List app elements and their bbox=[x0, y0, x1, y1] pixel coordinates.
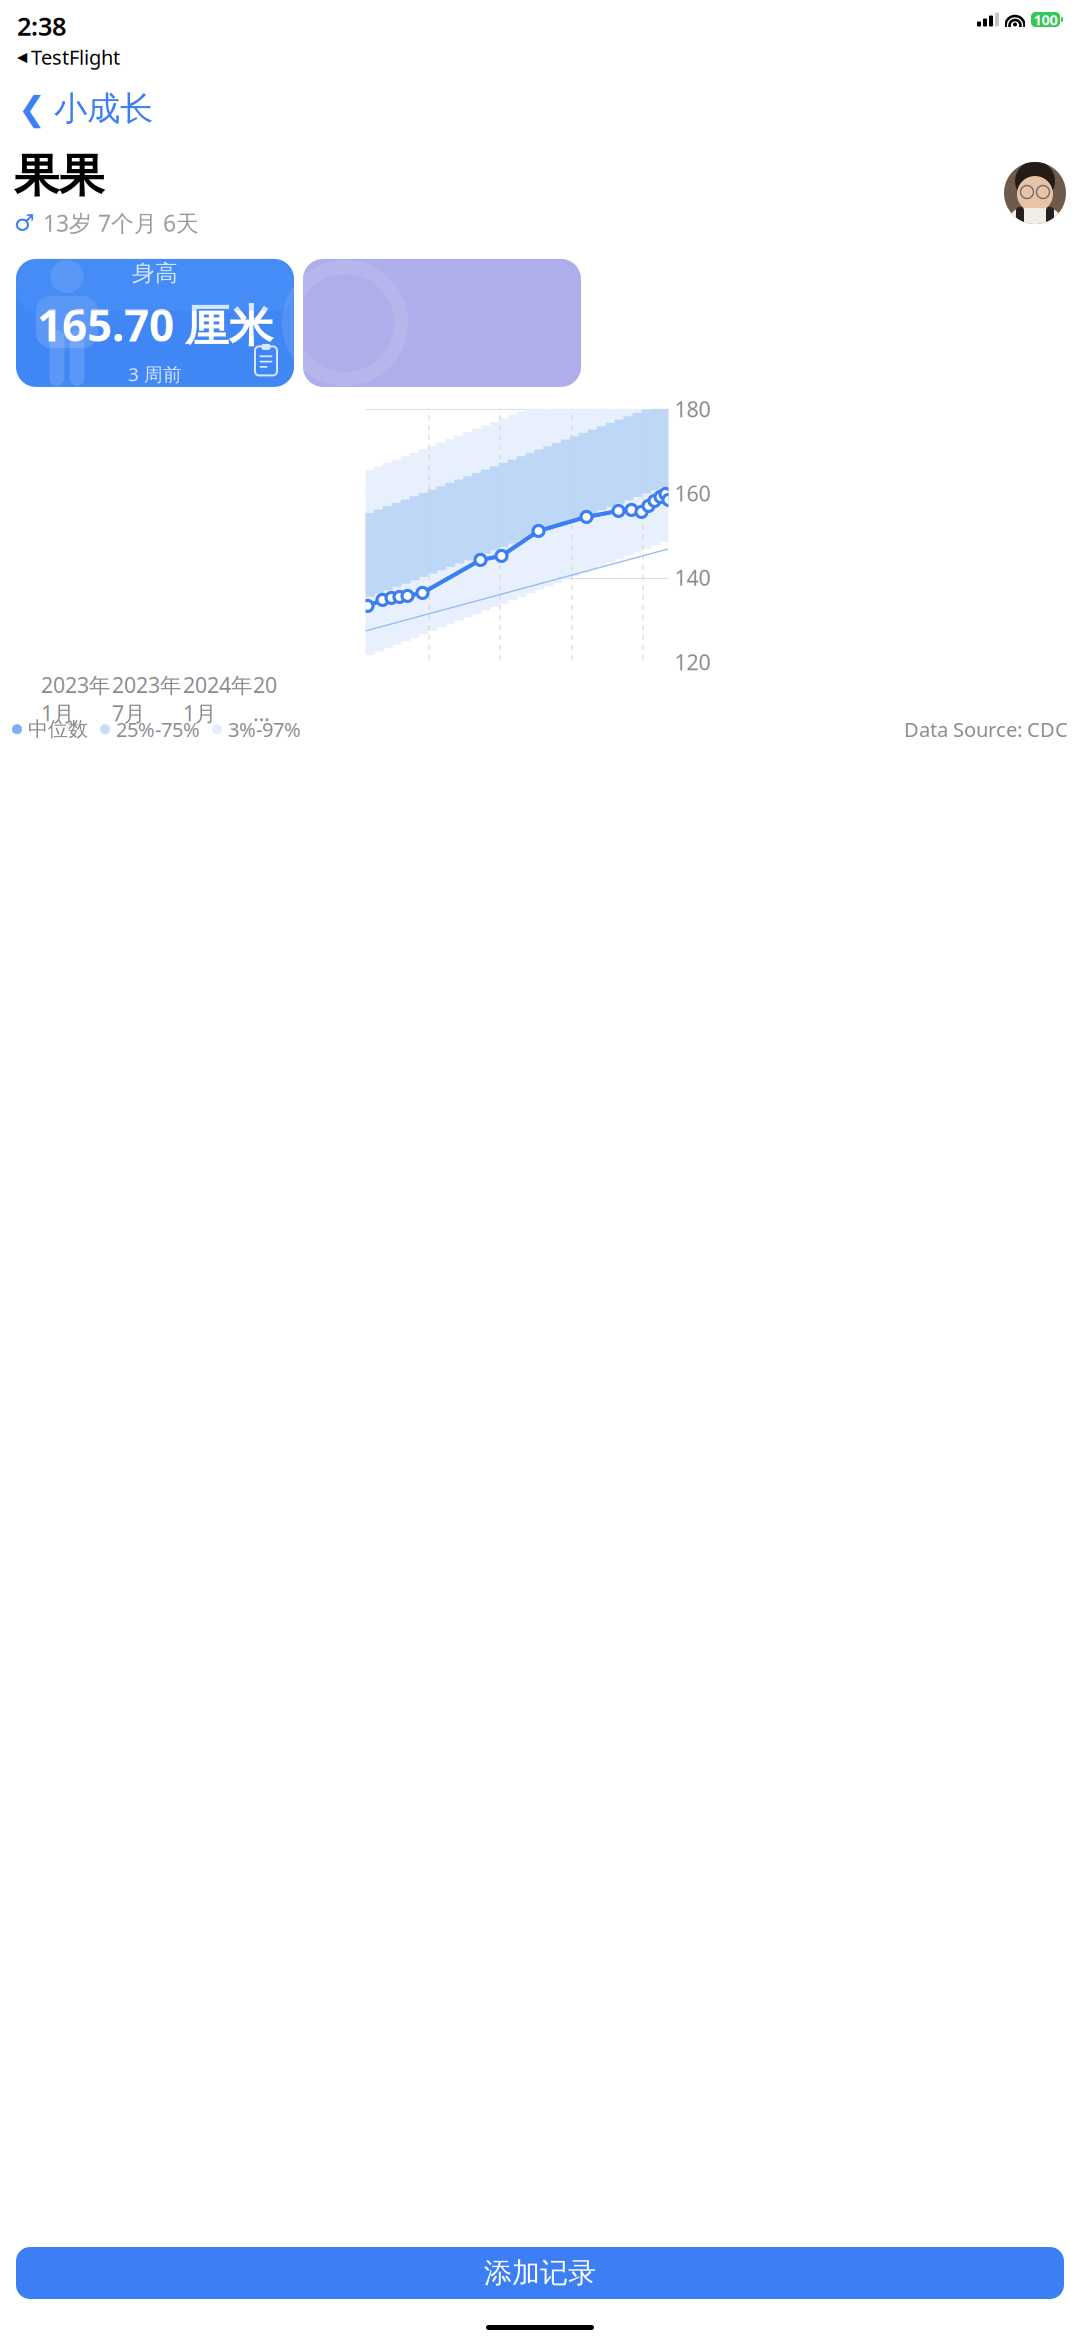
staticText: 165.70 厘米 bbox=[37, 295, 273, 354]
staticText: 中位数 bbox=[28, 717, 88, 741]
staticText: 果果 bbox=[14, 148, 104, 204]
button[interactable]: 身高 bbox=[16, 259, 294, 387]
staticText: 160 bbox=[674, 479, 710, 507]
staticText: 20… bbox=[253, 671, 277, 727]
staticText: 小成长 bbox=[54, 88, 153, 129]
staticText: 25%-75% bbox=[116, 716, 200, 742]
staticText: 140 bbox=[674, 563, 710, 592]
staticText: 120 bbox=[674, 648, 710, 676]
staticText: 3 周前 bbox=[128, 362, 182, 386]
button[interactable]: 头像 bbox=[1004, 162, 1066, 224]
staticText: ◀ bbox=[17, 49, 27, 64]
staticText: 180 bbox=[674, 395, 710, 423]
staticText: 2024年1月 bbox=[183, 671, 252, 727]
staticText: ♂ bbox=[14, 210, 34, 236]
staticText: TestFlight bbox=[31, 44, 120, 70]
staticText: 3%-97% bbox=[228, 716, 301, 742]
button[interactable]: 体重 bbox=[303, 259, 581, 387]
staticText: 100 bbox=[1033, 10, 1057, 29]
staticText: ❮ bbox=[18, 90, 46, 128]
staticText: 13岁 7个月 6天 bbox=[43, 208, 199, 238]
staticText: 2:38 bbox=[17, 9, 66, 43]
button[interactable]: ❮ bbox=[10, 82, 153, 135]
staticText: 2023年7月 bbox=[112, 671, 181, 727]
staticText: 身高 bbox=[132, 259, 178, 287]
button[interactable]: 添加记录 bbox=[16, 2247, 1064, 2299]
staticText: 添加记录 bbox=[484, 2256, 596, 2290]
staticText: 2023年1月 bbox=[41, 671, 110, 727]
staticText: Data Source: CDC bbox=[904, 716, 1068, 742]
